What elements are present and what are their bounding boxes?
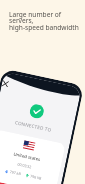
button[interactable] [0,181,48,184]
staticText: United states [13,150,42,162]
staticText: CONNECTED TO [14,119,52,133]
staticText: 797 kB [9,169,22,176]
button[interactable]: Close [1,79,11,89]
staticText: Large number of servers, high-speed band… [9,10,79,32]
staticText: 00:03:32 [17,161,33,169]
button[interactable]: United states [0,129,66,184]
staticText: 796 kB [30,173,43,181]
